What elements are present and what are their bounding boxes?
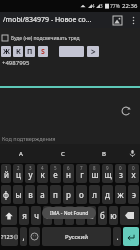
staticText: Ж xyxy=(3,47,10,57)
staticText: S xyxy=(41,47,45,57)
staticText: > xyxy=(91,46,96,57)
button[interactable]: р xyxy=(63,185,74,204)
staticText: Буде (не) подсвечивать тред xyxy=(11,35,80,42)
staticText: я xyxy=(22,210,27,221)
button[interactable]: К xyxy=(13,46,23,57)
button[interactable]: . xyxy=(113,227,121,246)
button[interactable]: ю xyxy=(109,206,118,225)
staticText: 4 xyxy=(41,165,44,171)
button[interactable]: б xyxy=(98,206,107,225)
button[interactable]: Symbols and language xyxy=(1,227,18,246)
button[interactable]: ц xyxy=(13,164,23,183)
button[interactable]: Русский xyxy=(42,227,111,246)
button[interactable]: Emoji xyxy=(29,227,40,246)
staticText: 2 xyxy=(17,165,20,171)
button[interactable]: е xyxy=(50,164,61,183)
button[interactable]: в xyxy=(25,185,35,204)
button[interactable]: А xyxy=(0,144,42,163)
staticText: ж xyxy=(117,189,124,200)
staticText: ч xyxy=(34,210,39,221)
button[interactable]: Shift xyxy=(1,206,17,225)
staticText: А xyxy=(19,150,23,158)
staticText: а xyxy=(40,189,45,200)
button[interactable]: ь xyxy=(87,206,96,225)
staticText: С xyxy=(61,150,65,158)
button[interactable]: ч xyxy=(31,206,41,225)
staticText: н xyxy=(66,169,71,180)
button[interactable]: н xyxy=(63,164,74,183)
staticText: 77% xyxy=(110,3,120,10)
button[interactable]: у xyxy=(25,164,35,183)
button[interactable]: х xyxy=(128,164,139,183)
button[interactable]: к xyxy=(37,164,48,183)
button[interactable]: щ xyxy=(102,164,113,183)
button[interactable]: Spoiler xyxy=(38,46,48,57)
button[interactable]: э xyxy=(128,185,139,204)
button[interactable]: ы xyxy=(13,185,23,204)
button[interactable]: More formatting xyxy=(87,46,99,57)
button[interactable]: з xyxy=(115,164,126,183)
button[interactable]: Quote xyxy=(59,46,84,57)
staticText: 3 xyxy=(100,3,103,9)
staticText: в xyxy=(28,189,33,200)
staticText: у xyxy=(28,169,33,180)
staticText: ?123 xyxy=(1,233,13,240)
button[interactable]: П xyxy=(25,46,35,57)
button[interactable]: Ж xyxy=(1,46,11,57)
button[interactable]: м xyxy=(54,206,63,225)
button[interactable]: т xyxy=(76,206,85,225)
staticText: 7 xyxy=(80,165,83,171)
staticText: , xyxy=(22,231,25,242)
button[interactable]: , xyxy=(20,227,27,246)
button[interactable]: а xyxy=(37,185,48,204)
button[interactable]: я xyxy=(19,206,29,225)
button[interactable]: More options xyxy=(127,14,139,26)
staticText: щ xyxy=(104,169,112,180)
staticText: п xyxy=(53,189,58,200)
button[interactable]: В xyxy=(83,144,124,163)
button[interactable]: й xyxy=(1,164,11,183)
button[interactable]: и xyxy=(65,206,74,225)
staticText: 22:36 xyxy=(122,2,138,10)
staticText: ш xyxy=(91,169,99,180)
staticText: о xyxy=(79,189,84,200)
button[interactable]: о xyxy=(76,185,87,204)
button[interactable]: с xyxy=(43,206,52,225)
button[interactable]: д xyxy=(102,185,113,204)
staticText: х xyxy=(131,169,136,180)
staticText: ы xyxy=(15,189,22,200)
staticText: ю xyxy=(110,210,117,221)
staticText: . xyxy=(116,231,119,242)
button[interactable]: ф xyxy=(1,185,11,204)
staticText: з xyxy=(119,169,123,180)
staticText: с xyxy=(46,210,50,221)
staticText: IMA - Not Found xyxy=(50,210,89,217)
button[interactable]: ж xyxy=(115,185,126,204)
staticText: Код подтверждения xyxy=(2,135,56,142)
staticText: 3 xyxy=(29,165,32,171)
staticText: П xyxy=(27,47,33,57)
staticText: л xyxy=(92,189,97,200)
button[interactable]: Attach image xyxy=(111,14,123,26)
staticText: 5 xyxy=(54,165,57,171)
staticText: р xyxy=(66,189,71,200)
button[interactable]: Enter xyxy=(123,227,139,246)
staticText: 8 xyxy=(93,165,96,171)
button[interactable]: Refresh captcha xyxy=(119,104,133,118)
staticText: э xyxy=(132,189,136,200)
button[interactable]: С xyxy=(42,144,83,163)
staticText: й xyxy=(4,169,9,180)
staticText: 4 xyxy=(92,3,95,9)
button[interactable]: г xyxy=(76,164,87,183)
staticText: г xyxy=(80,169,84,180)
button[interactable]: ш xyxy=(89,164,100,183)
button[interactable]: Voice input xyxy=(124,144,140,163)
button[interactable]: Backspace xyxy=(120,206,139,225)
button[interactable]: п xyxy=(50,185,61,204)
staticText: /mobi/834979 - Новое со... xyxy=(3,15,104,25)
staticText: 0 xyxy=(132,165,135,171)
button[interactable]: Буде (не) подсвечивать тред xyxy=(0,32,140,44)
staticText: +4987995 xyxy=(2,59,30,67)
button[interactable]: л xyxy=(89,185,100,204)
staticText: д xyxy=(105,189,110,200)
